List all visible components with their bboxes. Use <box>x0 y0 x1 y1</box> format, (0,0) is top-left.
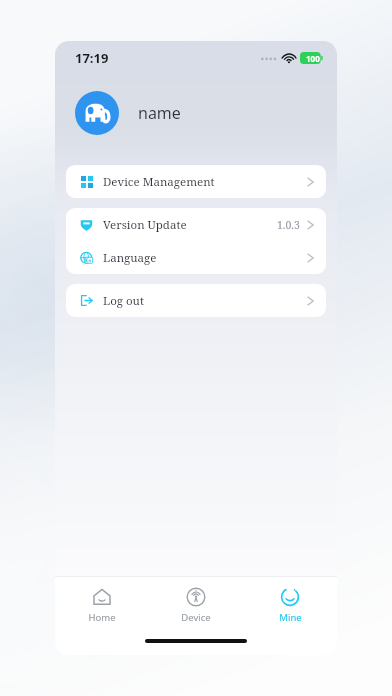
staticText: Language <box>103 250 157 266</box>
staticText: Home <box>88 611 116 624</box>
staticText: Device Management <box>103 174 215 190</box>
button[interactable]: Home <box>55 586 149 624</box>
staticText: 17:19 <box>75 49 109 67</box>
button[interactable]: Log out <box>66 284 326 317</box>
staticText: name <box>138 102 181 124</box>
staticText: Log out <box>103 293 144 309</box>
button[interactable]: Version Update <box>66 208 326 241</box>
button[interactable]: Device <box>149 586 243 624</box>
button[interactable]: name <box>55 75 337 151</box>
button[interactable]: Mine <box>243 586 337 624</box>
staticText: Mine <box>279 611 302 624</box>
staticText: Device <box>181 611 211 624</box>
button[interactable]: Language <box>66 241 326 274</box>
staticText: 1.0.3 <box>277 218 300 232</box>
staticText: Version Update <box>103 217 187 233</box>
staticText: 100 <box>306 53 320 64</box>
button[interactable]: Device Management <box>66 165 326 198</box>
